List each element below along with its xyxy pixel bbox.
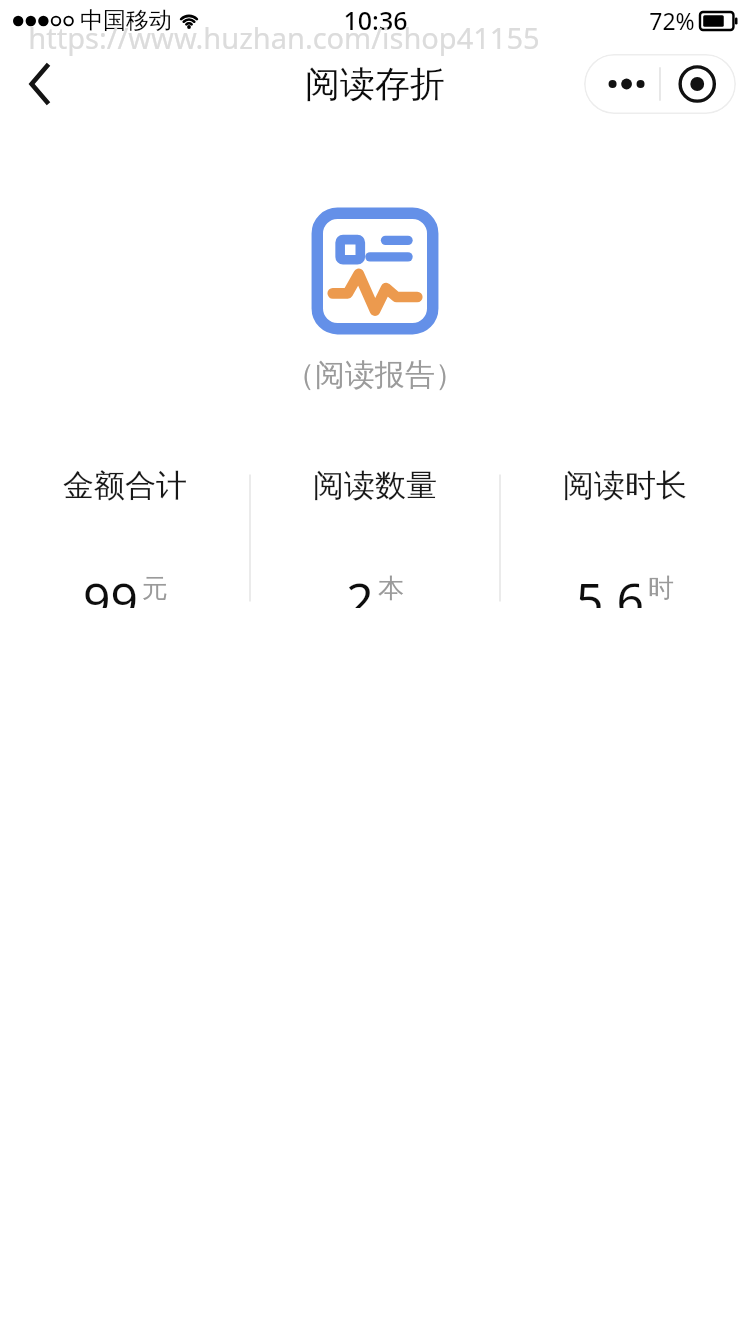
staticText: 中国移动: [80, 6, 172, 35]
staticText: 阅读时长: [563, 466, 687, 505]
button[interactable]: 阅读数量: [250, 448, 500, 608]
staticText: 时: [648, 572, 674, 605]
staticText: 99: [83, 567, 138, 608]
staticText: 金额合计: [63, 466, 187, 505]
staticText: 5.6: [576, 567, 644, 608]
staticText: （阅读报告）: [285, 356, 465, 394]
staticText: 72%: [649, 5, 695, 36]
staticText: 阅读数量: [313, 466, 437, 505]
staticText: 元: [142, 572, 168, 605]
staticText: 本: [378, 572, 404, 605]
button[interactable]: Menu and close: [584, 54, 736, 114]
button[interactable]: 阅读时长: [500, 448, 750, 608]
staticText: 10:36: [343, 3, 408, 37]
button[interactable]: Back: [10, 54, 70, 114]
staticText: https://www.huzhan.com/ishop41155: [28, 18, 540, 57]
staticText: 阅读存折: [305, 62, 445, 106]
button[interactable]: 金额合计: [0, 448, 250, 608]
staticText: 2: [346, 567, 374, 608]
